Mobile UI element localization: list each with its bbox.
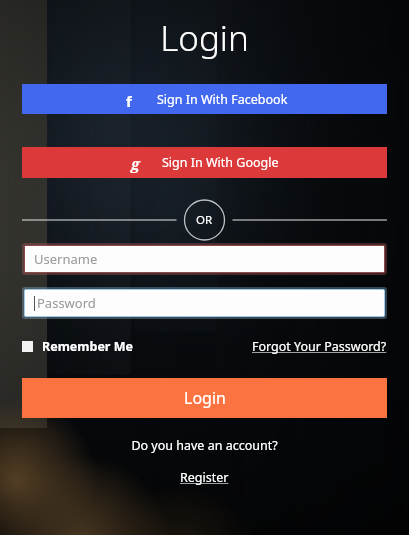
button[interactable]: Forgot Your Password?	[252, 338, 387, 355]
staticText: Remember Me	[42, 338, 133, 355]
staticText: Sign In With Facebook	[157, 91, 288, 108]
staticText: Register	[180, 469, 229, 486]
staticText: g	[131, 153, 140, 173]
staticText: Login	[184, 387, 226, 409]
staticText: Sign In With Google	[162, 154, 279, 171]
staticText: Forgot Your Password?	[252, 338, 387, 355]
staticText: OR	[196, 212, 213, 228]
button[interactable]: Login	[22, 378, 387, 418]
staticText: Username	[34, 250, 98, 268]
button[interactable]: Username	[25, 246, 384, 272]
staticText: Login	[0, 14, 409, 62]
button[interactable]: Password	[25, 290, 384, 316]
button[interactable]: Register	[180, 469, 229, 486]
button[interactable]: g	[22, 147, 387, 178]
staticText: Password	[37, 294, 96, 312]
button[interactable]: f	[22, 84, 387, 114]
staticText: f	[126, 91, 132, 107]
staticText: Do you have an account?	[0, 437, 409, 454]
button[interactable]: Remember Me	[22, 338, 133, 355]
